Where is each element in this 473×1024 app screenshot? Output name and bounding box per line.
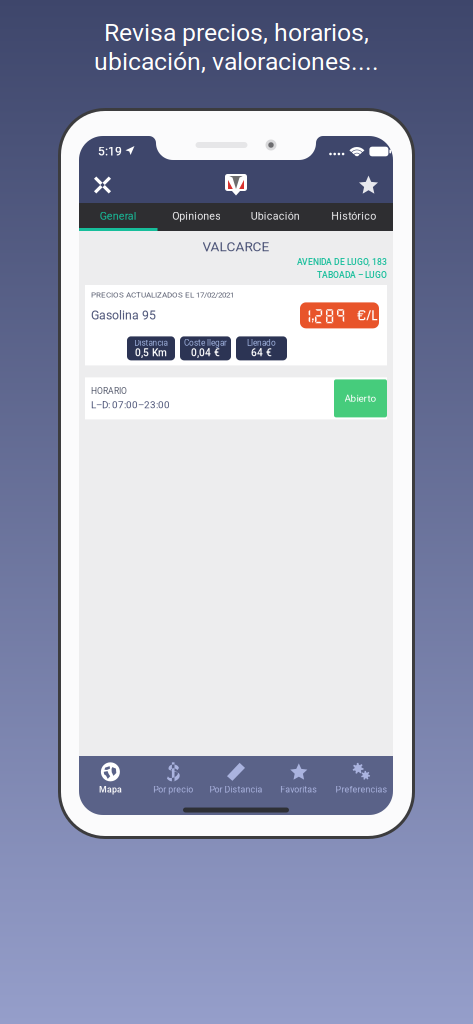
button[interactable]: Ubicación — [236, 203, 314, 231]
staticText: 1,289 €/L — [301, 306, 378, 325]
staticText: AVENIDA DE LUGO, 183 — [297, 257, 387, 267]
staticText: Revisa precios, horarios, — [104, 18, 369, 47]
staticText: Histórico — [331, 210, 376, 222]
button[interactable]: Por Distancia — [205, 757, 267, 799]
staticText: Abierto — [344, 393, 376, 404]
button[interactable]: Mapa — [79, 757, 142, 799]
button[interactable]: Abierto — [334, 379, 387, 417]
button[interactable]: Opiniones — [157, 203, 236, 231]
staticText: Mapa — [99, 784, 122, 795]
button[interactable]: Histórico — [314, 203, 393, 231]
button[interactable]: Por precio — [142, 757, 205, 799]
button[interactable]: Favorito — [346, 167, 393, 203]
staticText: General — [100, 210, 137, 222]
staticText: Ubicación — [251, 210, 300, 222]
staticText: ubicación, valoraciones.... — [94, 47, 379, 76]
staticText: 0,04 € — [191, 347, 220, 359]
button[interactable]: Favoritas — [267, 757, 330, 799]
staticText: HORARIO — [91, 386, 127, 396]
staticText: Distancia — [134, 338, 167, 348]
staticText: Llenado — [247, 338, 276, 348]
staticText: Por Distancia — [209, 784, 262, 795]
staticText: Favoritas — [280, 784, 317, 795]
staticText: 5:19 — [98, 144, 122, 159]
button[interactable]: General — [79, 203, 157, 231]
staticText: VALCARCE — [202, 238, 269, 254]
staticText: 0,5 Km — [135, 347, 167, 359]
staticText: L–D: 07:00–23:00 — [91, 399, 170, 411]
button[interactable]: Cerrar — [79, 167, 123, 202]
staticText: Coste llegar — [184, 338, 227, 348]
staticText: Preferencias — [336, 784, 388, 795]
staticText: Opiniones — [172, 210, 221, 222]
staticText: PRECIOS ACTUALIZADOS EL 17/02/2021 — [91, 290, 234, 299]
staticText: 64 € — [251, 347, 272, 359]
staticText: TABOADA – LUGO — [317, 270, 387, 280]
staticText: Por precio — [153, 784, 193, 795]
button[interactable]: Preferencias — [330, 757, 393, 799]
staticText: Gasolina 95 — [91, 308, 156, 323]
